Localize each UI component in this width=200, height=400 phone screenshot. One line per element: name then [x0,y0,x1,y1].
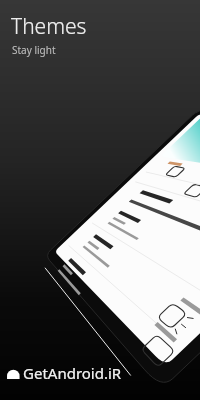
staticText: Themes [11,12,87,41]
staticText: Stay light [12,43,56,57]
button[interactable]: GetAndroid.iR [4,363,122,383]
staticText: GetAndroid.iR [23,363,122,383]
